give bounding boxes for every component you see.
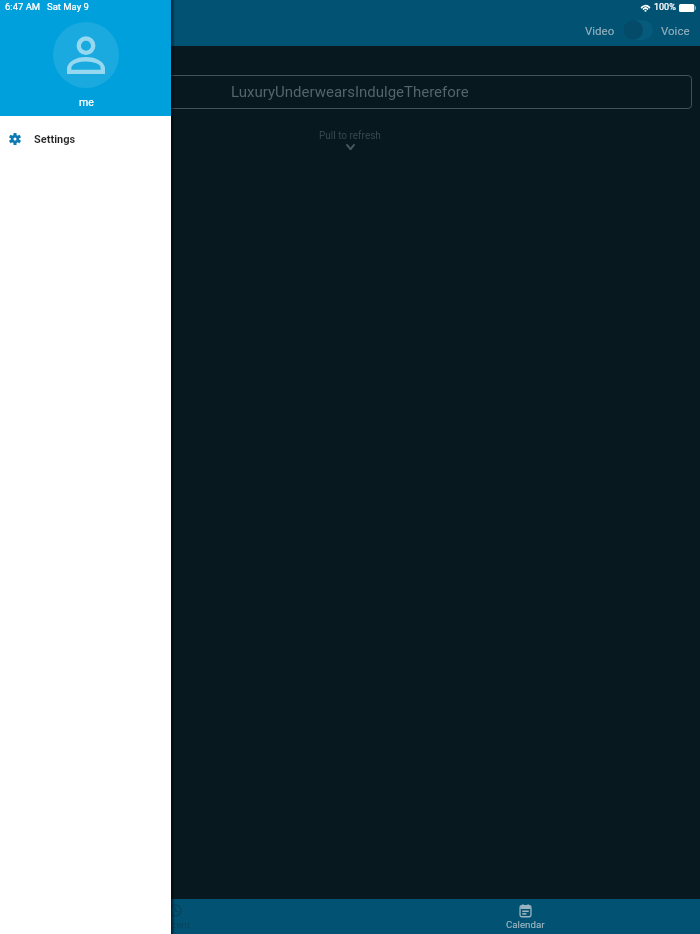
staticText: Settings <box>34 133 76 146</box>
staticText: Video <box>585 24 615 37</box>
button[interactable]: Calendar <box>350 899 700 934</box>
staticText: Pull to refresh <box>319 130 381 142</box>
button[interactable]: LuxuryUnderwearsIndulgeTherefore <box>8 75 692 109</box>
staticText: 100% <box>654 2 676 13</box>
button[interactable]: Switch between video and voice <box>623 20 653 40</box>
staticText: Calendar <box>506 919 545 930</box>
staticText: LuxuryUnderwearsIndulgeTherefore <box>231 83 469 101</box>
staticText: 6:47 AM <box>5 1 41 12</box>
staticText: Sat May 9 <box>47 1 89 12</box>
staticText: Voice <box>661 24 690 37</box>
button[interactable]: Recent <box>0 899 350 934</box>
button[interactable]: Settings <box>0 116 171 162</box>
staticText: Recent <box>160 919 190 930</box>
staticText: me <box>79 96 94 108</box>
